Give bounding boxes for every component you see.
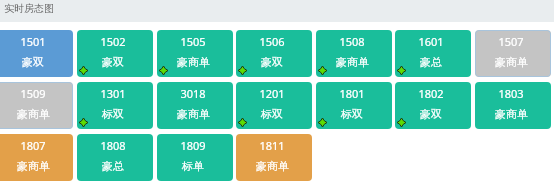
button[interactable]: 1509 xyxy=(0,82,73,129)
staticText: 豪商单 xyxy=(177,107,210,121)
staticText: 1505 xyxy=(180,34,206,49)
staticText: 1601 xyxy=(418,34,444,49)
other: 预订标记 xyxy=(318,66,327,75)
other: 预订标记 xyxy=(238,118,247,127)
staticText: 豪商单 xyxy=(495,107,528,121)
staticText: 标单 xyxy=(182,159,204,173)
staticText: 豪总 xyxy=(420,55,442,69)
staticText: 1508 xyxy=(339,34,365,49)
staticText: 豪商单 xyxy=(17,159,50,173)
other: 预订标记 xyxy=(159,66,168,75)
staticText: 标双 xyxy=(341,107,363,121)
button[interactable]: 1508 xyxy=(316,30,392,77)
staticText: 1301 xyxy=(100,86,126,101)
staticText: 豪商单 xyxy=(495,55,528,69)
staticText: 豪总 xyxy=(102,159,124,173)
button[interactable]: 1501 xyxy=(0,30,73,77)
button[interactable]: 1807 xyxy=(0,134,73,181)
staticText: 1811 xyxy=(259,138,285,153)
staticText: 豪双 xyxy=(102,55,124,69)
button[interactable]: 1201 xyxy=(236,82,312,129)
staticText: 1801 xyxy=(339,86,365,101)
staticText: 1506 xyxy=(259,34,285,49)
other: 预订标记 xyxy=(397,66,406,75)
staticText: 1802 xyxy=(418,86,444,101)
staticText: 1501 xyxy=(20,34,46,49)
button[interactable]: 1502 xyxy=(77,30,153,77)
button[interactable]: 1803 xyxy=(475,82,551,129)
button[interactable]: 1506 xyxy=(236,30,312,77)
staticText: 标双 xyxy=(102,107,124,121)
button[interactable]: 1801 xyxy=(316,82,392,129)
button[interactable]: 1507 xyxy=(475,30,551,77)
staticText: 实时房态图 xyxy=(4,2,54,15)
staticText: 1507 xyxy=(498,34,524,49)
other: 预订标记 xyxy=(79,118,88,127)
staticText: 1201 xyxy=(259,86,285,101)
staticText: 1803 xyxy=(498,86,524,101)
staticText: 1509 xyxy=(20,86,46,101)
staticText: 1807 xyxy=(20,138,46,153)
staticText: 豪商单 xyxy=(177,55,210,69)
staticText: 标双 xyxy=(261,107,283,121)
other: 预订标记 xyxy=(238,66,247,75)
button[interactable]: 1301 xyxy=(77,82,153,129)
staticText: 豪双 xyxy=(261,55,283,69)
staticText: 豪商单 xyxy=(256,159,289,173)
staticText: 豪商单 xyxy=(17,107,50,121)
button[interactable]: 1811 xyxy=(236,134,312,181)
other: 预订标记 xyxy=(397,118,406,127)
staticText: 1502 xyxy=(100,34,126,49)
staticText: 3018 xyxy=(180,86,206,101)
button[interactable]: 1505 xyxy=(157,30,233,77)
button[interactable]: 1808 xyxy=(77,134,153,181)
button[interactable]: 1809 xyxy=(157,134,233,181)
staticText: 1808 xyxy=(100,138,126,153)
staticText: 豪双 xyxy=(420,107,442,121)
other: 预订标记 xyxy=(79,66,88,75)
button[interactable]: 1601 xyxy=(395,30,471,77)
button[interactable]: 3018 xyxy=(157,82,233,129)
staticText: 豪商单 xyxy=(336,55,369,69)
button[interactable]: 1802 xyxy=(395,82,471,129)
staticText: 1809 xyxy=(180,138,206,153)
staticText: 豪双 xyxy=(22,55,44,69)
other: 预订标记 xyxy=(318,118,327,127)
